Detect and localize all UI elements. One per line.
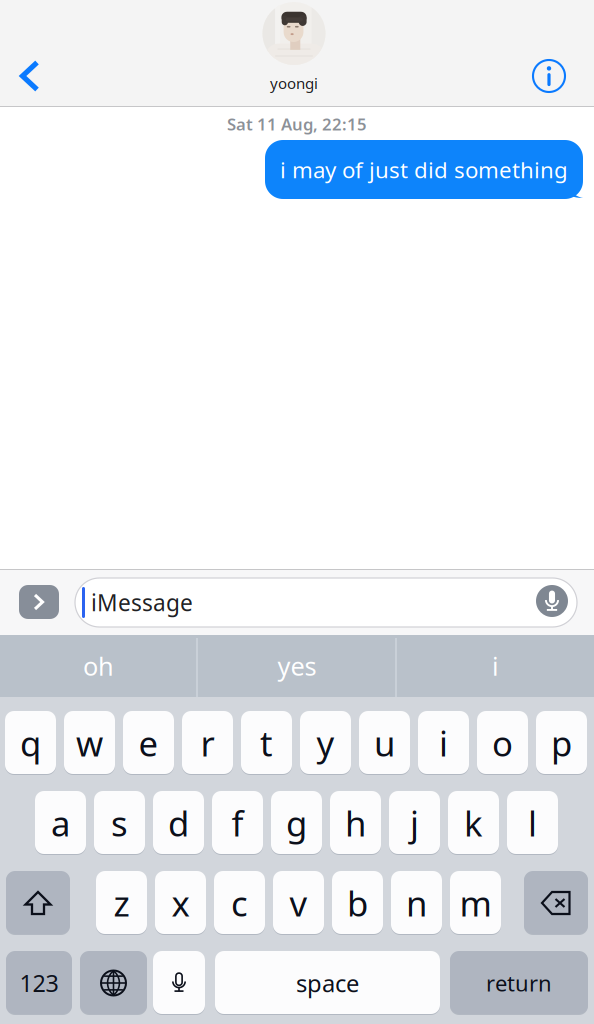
staticText: e xyxy=(138,719,158,767)
staticText: y xyxy=(316,719,334,767)
button[interactable]: Dictate xyxy=(534,583,570,619)
staticText: m xyxy=(459,879,491,927)
staticText: i xyxy=(439,719,448,767)
staticText: j xyxy=(410,799,419,847)
staticText: Sat 11 Aug, 22:15 xyxy=(227,113,367,135)
button[interactable]: w xyxy=(64,711,115,775)
staticText: b xyxy=(347,879,368,927)
button[interactable]: Details xyxy=(517,48,581,104)
button[interactable]: k xyxy=(448,791,499,855)
staticText: iMessage xyxy=(91,587,193,618)
staticText: q xyxy=(20,719,41,767)
staticText: return xyxy=(486,968,552,998)
staticText: i may of just did something xyxy=(280,154,568,185)
button[interactable]: b xyxy=(332,871,383,935)
staticText: k xyxy=(464,799,483,847)
staticText: w xyxy=(76,719,103,767)
button[interactable]: space xyxy=(215,951,440,1015)
staticText: r xyxy=(200,719,214,767)
staticText: l xyxy=(528,799,537,847)
button[interactable]: z xyxy=(96,871,147,935)
staticText: yoongi xyxy=(270,73,318,93)
button[interactable]: n xyxy=(391,871,442,935)
staticText: 123 xyxy=(19,967,58,999)
staticText: z xyxy=(113,879,129,927)
button[interactable]: Apps xyxy=(19,585,59,619)
staticText: f xyxy=(231,799,243,847)
button[interactable]: iMessage xyxy=(75,578,577,627)
button[interactable]: yes xyxy=(198,635,396,697)
staticText: o xyxy=(492,719,513,767)
button[interactable]: q xyxy=(5,711,56,775)
button[interactable]: h xyxy=(330,791,381,855)
button[interactable]: c xyxy=(214,871,265,935)
staticText: h xyxy=(345,799,366,847)
button[interactable]: x xyxy=(155,871,206,935)
button[interactable]: t xyxy=(241,711,292,775)
button[interactable]: g xyxy=(271,791,322,855)
staticText: t xyxy=(260,719,273,767)
button[interactable]: j xyxy=(389,791,440,855)
button[interactable]: r xyxy=(182,711,233,775)
button[interactable]: return xyxy=(450,951,588,1015)
button[interactable]: y xyxy=(300,711,351,775)
button[interactable]: Delete xyxy=(524,871,588,935)
staticText: d xyxy=(168,799,189,847)
button[interactable]: Next keyboard xyxy=(80,951,147,1015)
button[interactable]: Shift xyxy=(6,871,70,935)
staticText: yes xyxy=(277,649,316,683)
button[interactable]: l xyxy=(507,791,558,855)
staticText: v xyxy=(289,879,307,927)
button[interactable]: oh xyxy=(0,635,197,697)
button[interactable]: Back xyxy=(0,46,60,106)
button[interactable]: u xyxy=(359,711,410,775)
staticText: s xyxy=(111,799,128,847)
staticText: u xyxy=(374,719,395,767)
staticText: a xyxy=(51,799,70,847)
button[interactable]: e xyxy=(123,711,174,775)
button[interactable]: p xyxy=(536,711,587,775)
button[interactable]: m xyxy=(450,871,501,935)
button[interactable]: 123 xyxy=(6,951,72,1015)
button[interactable]: o xyxy=(477,711,528,775)
button[interactable]: i xyxy=(397,635,594,697)
staticText: i xyxy=(492,649,499,683)
button[interactable]: d xyxy=(153,791,204,855)
button[interactable]: v xyxy=(273,871,324,935)
button[interactable]: yoongi xyxy=(232,2,356,100)
button[interactable]: i xyxy=(418,711,469,775)
staticText: space xyxy=(296,967,359,999)
staticText: x xyxy=(171,879,189,927)
button[interactable]: f xyxy=(212,791,263,855)
staticText: n xyxy=(406,879,427,927)
staticText: p xyxy=(551,719,572,767)
staticText: oh xyxy=(83,649,114,683)
button[interactable]: a xyxy=(35,791,86,855)
button[interactable]: s xyxy=(94,791,145,855)
button[interactable]: Dictate xyxy=(153,951,205,1015)
staticText: c xyxy=(231,879,248,927)
staticText: g xyxy=(286,799,307,847)
